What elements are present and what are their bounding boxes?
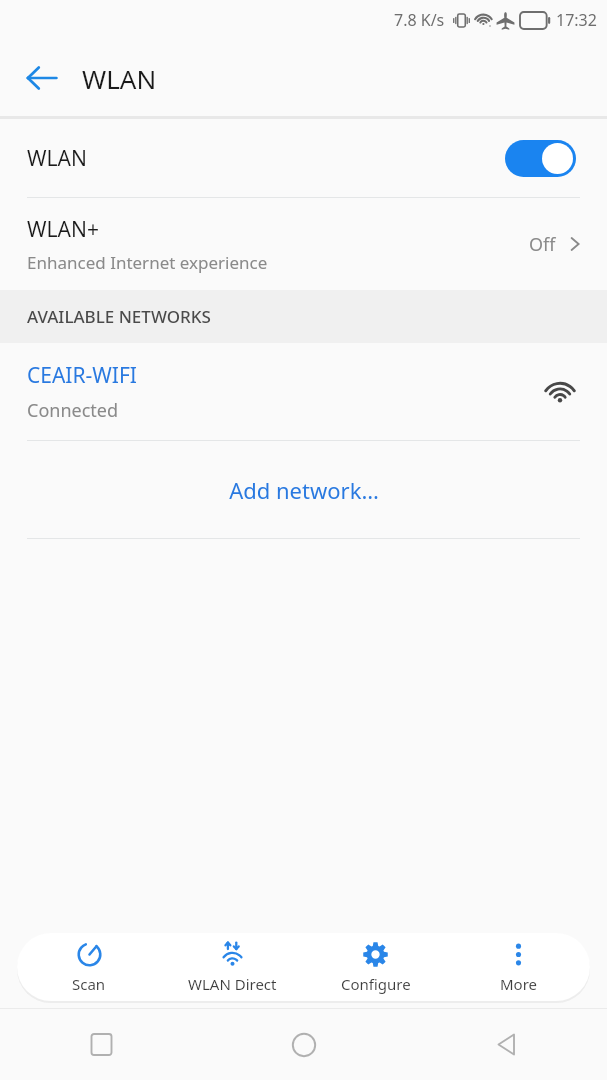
staticText: Scan — [72, 974, 106, 994]
staticText: 17:32 — [556, 9, 597, 31]
staticText: 7.8 K/s — [394, 9, 445, 31]
staticText: AVAILABLE NETWORKS — [27, 305, 211, 328]
button[interactable]: WLAN Direct — [161, 933, 304, 1001]
staticText: WLAN Direct — [188, 974, 277, 994]
button[interactable]: Add network… — [0, 441, 607, 538]
button[interactable]: More — [447, 933, 590, 1001]
button[interactable]: Recents — [0, 1009, 203, 1080]
staticText: CEAIR-WIFI — [27, 361, 137, 390]
button[interactable]: Scan — [17, 933, 161, 1001]
button[interactable]: Back — [405, 1009, 607, 1080]
staticText: WLAN — [27, 144, 505, 173]
staticText: More — [500, 974, 538, 994]
staticText: Enhanced Internet experience — [27, 251, 268, 274]
staticText: Off — [529, 232, 556, 257]
other: WLAN on — [505, 140, 576, 177]
button[interactable]: Back — [14, 50, 70, 106]
button[interactable]: CEAIR-WIFI — [0, 343, 607, 440]
staticText: WLAN+ — [27, 215, 99, 244]
button[interactable]: WLAN — [0, 119, 607, 197]
button[interactable]: WLAN+ — [0, 198, 607, 290]
staticText: Configure — [341, 974, 411, 994]
staticText: Add network… — [229, 475, 379, 505]
button[interactable]: Home — [203, 1009, 405, 1080]
staticText: Connected — [27, 398, 119, 423]
button[interactable]: Configure — [304, 933, 447, 1001]
staticText: WLAN — [82, 61, 157, 96]
